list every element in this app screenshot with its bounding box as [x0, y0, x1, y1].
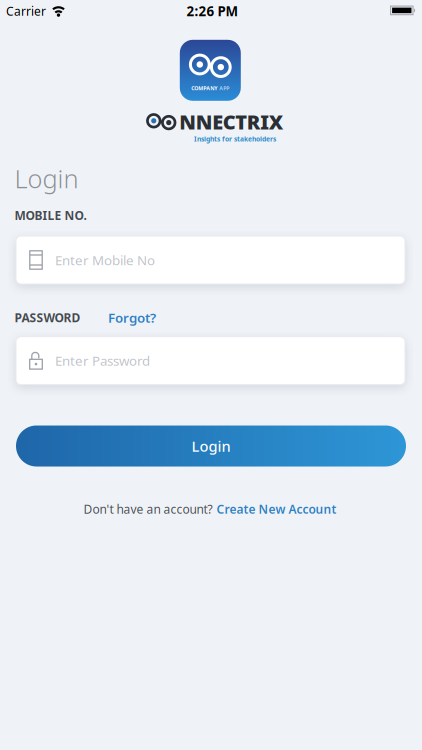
staticText: PASSWORD — [14, 310, 80, 325]
staticText: Insights for stakeholders — [194, 135, 276, 143]
staticText: COMPANY — [191, 85, 217, 92]
staticText: Enter Password — [55, 352, 150, 369]
staticText: APP — [219, 85, 229, 92]
staticText: Carrier — [6, 3, 46, 19]
staticText: Enter Mobile No — [55, 251, 155, 269]
button[interactable]: Enter Password — [16, 337, 405, 385]
staticText: Forgot? — [108, 309, 156, 326]
staticText: 2:26 PM — [186, 2, 238, 20]
staticText: Create New Account — [216, 501, 336, 517]
staticText: Don't have an account? — [83, 501, 212, 517]
button[interactable]: Enter Mobile No — [16, 236, 405, 284]
button[interactable]: Login — [16, 425, 406, 466]
button[interactable]: Create New Account — [216, 501, 336, 517]
staticText: Login — [14, 162, 78, 195]
staticText: MOBILE NO. — [14, 207, 86, 223]
staticText: NNECTRIX — [179, 108, 283, 135]
button[interactable]: Forgot? — [108, 309, 156, 326]
staticText: Login — [191, 436, 230, 456]
